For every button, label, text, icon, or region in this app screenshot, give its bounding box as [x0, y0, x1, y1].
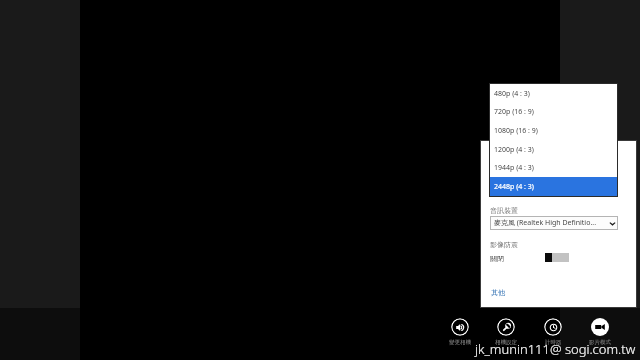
button[interactable]: 1200p (4 : 3) — [490, 140, 617, 159]
staticText: 其他 — [491, 288, 505, 297]
staticText: 影片模式 — [589, 339, 611, 346]
button[interactable]: 720p (16 : 9) — [490, 102, 617, 121]
button[interactable]: Sound settings — [451, 318, 469, 336]
staticText: 相機設定 — [495, 339, 517, 346]
staticText: 變更相機 — [449, 339, 471, 346]
staticText: 720p (16 : 9) — [494, 107, 534, 117]
button[interactable]: Video mode — [591, 318, 609, 336]
staticText: 1944p (4 : 3) — [494, 163, 534, 173]
button[interactable]: 2448p (4 : 3) — [490, 177, 617, 196]
staticText: 2448p (4 : 3) — [494, 182, 534, 192]
staticText: 音訊裝置 — [490, 206, 518, 215]
button[interactable]: 480p (4 : 3) — [490, 84, 617, 103]
staticText: 480p (4 : 3) — [494, 89, 530, 99]
button[interactable]: 1080p (16 : 9) — [490, 121, 617, 140]
button[interactable]: 其他 — [491, 288, 505, 297]
staticText: 計時器 — [545, 339, 562, 346]
button[interactable]: 1944p (4 : 3) — [490, 158, 617, 177]
button[interactable]: Camera settings — [497, 318, 515, 336]
staticText: 關閉 — [490, 254, 504, 263]
button[interactable]: Timer — [544, 318, 562, 336]
staticText: 麥克風 (Realtek High Definitio... — [494, 218, 597, 228]
staticText: 1200p (4 : 3) — [494, 145, 534, 155]
staticText: 1080p (16 : 9) — [494, 126, 538, 136]
staticText: jk_munin111@ sogi.com.tw — [475, 340, 636, 358]
button[interactable]: 麥克風 (Realtek High Definitio... — [490, 216, 618, 230]
staticText: 影像防震 — [490, 240, 518, 249]
button[interactable]: Image stabilization off — [545, 253, 569, 262]
